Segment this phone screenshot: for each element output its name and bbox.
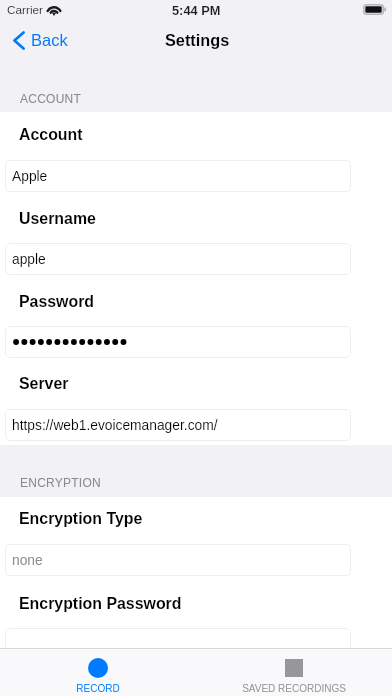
staticText: Encryption Type <box>19 510 143 528</box>
button[interactable]: Back <box>13 28 68 52</box>
staticText: SAVED RECORDINGS <box>242 683 346 694</box>
staticText: Back <box>31 31 68 49</box>
staticText: none <box>12 553 43 568</box>
button[interactable] <box>5 326 351 358</box>
staticText: Server <box>19 375 69 393</box>
other: Battery full <box>363 4 387 15</box>
button[interactable]: RECORD <box>0 648 196 696</box>
button[interactable] <box>5 628 351 660</box>
staticText: ENCRYPTION <box>20 476 101 489</box>
staticText: ACCOUNT <box>20 92 82 105</box>
staticText: Encryption Password <box>19 595 182 613</box>
button[interactable]: none <box>5 544 351 576</box>
button[interactable]: SAVED RECORDINGS <box>196 648 392 696</box>
staticText: Carrier <box>7 3 44 16</box>
other: Wi-Fi <box>46 3 62 16</box>
staticText: 5:44 PM <box>172 3 221 17</box>
button[interactable]: Apple <box>5 160 351 192</box>
button[interactable]: apple <box>5 243 351 275</box>
staticText: Account <box>19 126 83 144</box>
staticText: Settings <box>165 31 230 49</box>
staticText: apple <box>12 252 46 267</box>
button[interactable]: https://web1.evoicemanager.com/ <box>5 409 351 441</box>
staticText: Apple <box>12 169 48 184</box>
staticText: https://web1.evoicemanager.com/ <box>12 418 218 433</box>
staticText: Username <box>19 210 96 228</box>
staticText: RECORD <box>76 683 120 694</box>
staticText: Password <box>19 293 95 311</box>
